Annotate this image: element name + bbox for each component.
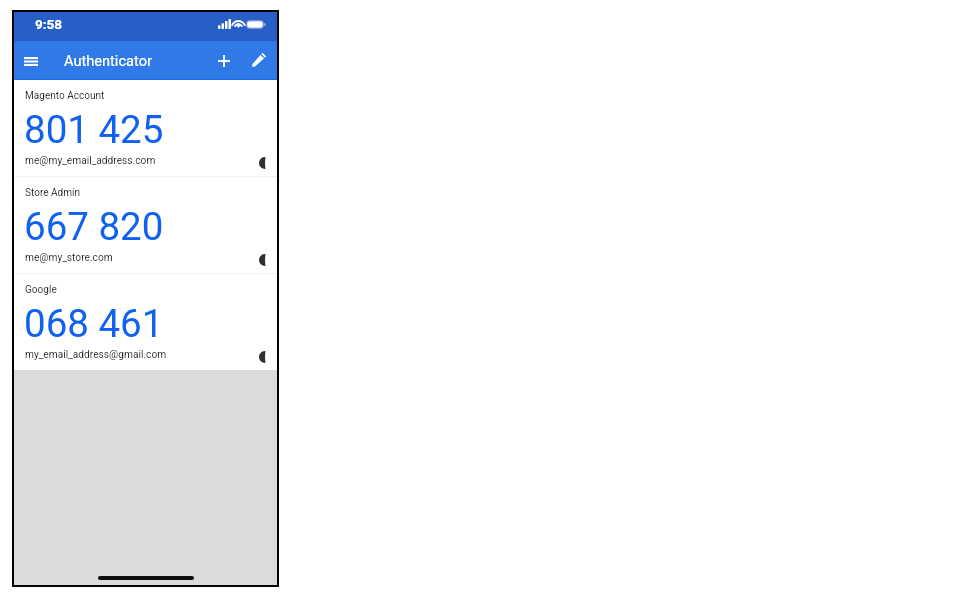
button[interactable]: Add account: [210, 47, 238, 75]
staticText: Authenticator: [64, 52, 152, 69]
staticText: Magento Account: [25, 90, 105, 102]
staticText: Google: [25, 284, 57, 296]
staticText: Store Admin: [25, 187, 81, 199]
staticText: 801 425: [24, 107, 164, 152]
staticText: me@my_store.com: [25, 252, 113, 264]
staticText: my_email_address@gmail.com: [25, 349, 167, 361]
button[interactable]: Google: [14, 274, 277, 370]
staticText: me@my_email_address.com: [25, 155, 156, 167]
button[interactable]: Edit accounts: [245, 45, 273, 73]
button[interactable]: Magento Account: [14, 80, 277, 176]
staticText: 667 820: [24, 204, 164, 249]
staticText: 9:58: [35, 16, 63, 32]
button[interactable]: Open navigation menu: [17, 47, 45, 75]
staticText: 068 461: [24, 301, 164, 346]
button[interactable]: Store Admin: [14, 177, 277, 273]
